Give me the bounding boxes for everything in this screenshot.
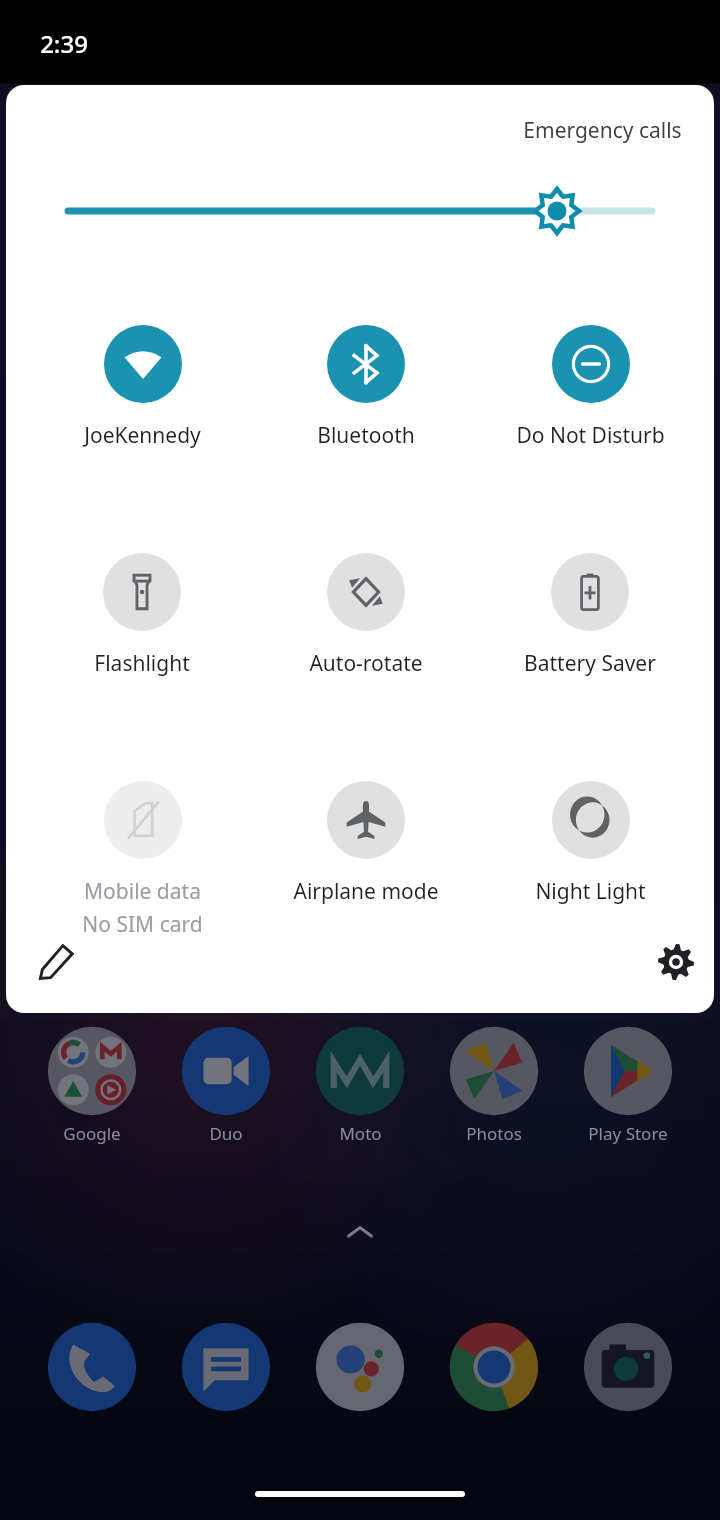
button[interactable]: Bluetooth xyxy=(258,325,474,515)
button[interactable]: Messages xyxy=(179,1320,273,1414)
staticText: 2:39 xyxy=(40,27,88,60)
button[interactable] xyxy=(6,173,714,243)
staticText: No SIM card xyxy=(82,910,203,939)
button[interactable]: Google xyxy=(38,1024,146,1152)
button[interactable]: Emergency calls xyxy=(519,112,686,149)
button[interactable]: Photos xyxy=(440,1024,548,1152)
staticText: Night Light xyxy=(535,877,646,906)
button[interactable]: Airplane mode xyxy=(258,781,474,971)
button[interactable]: Flashlight xyxy=(34,553,250,743)
button[interactable]: Chrome xyxy=(447,1320,541,1414)
button[interactable]: Mobile data xyxy=(34,781,250,971)
staticText: Flashlight xyxy=(94,649,190,678)
staticText: Airplane mode xyxy=(293,877,439,906)
button[interactable]: Settings xyxy=(644,930,708,994)
button[interactable]: Night Light xyxy=(482,781,698,971)
button[interactable]: Camera xyxy=(581,1320,675,1414)
button[interactable]: Assistant xyxy=(313,1320,407,1414)
button[interactable]: Duo xyxy=(172,1024,280,1152)
staticText: JoeKennedy xyxy=(84,421,201,450)
staticText: Bluetooth xyxy=(317,421,415,450)
button[interactable]: Battery Saver xyxy=(482,553,698,743)
button[interactable]: Phone xyxy=(45,1320,139,1414)
button[interactable]: Moto xyxy=(306,1024,414,1152)
staticText: Battery Saver xyxy=(524,649,656,678)
button[interactable]: JoeKennedy xyxy=(34,325,250,515)
button[interactable]: Play Store xyxy=(574,1024,682,1152)
button[interactable]: Do Not Disturb xyxy=(482,325,698,515)
staticText: Mobile data xyxy=(84,877,201,906)
staticText: Duo xyxy=(209,1122,243,1145)
button[interactable]: Edit tiles xyxy=(24,930,88,994)
staticText: Do Not Disturb xyxy=(516,421,665,450)
staticText: Play Store xyxy=(588,1122,668,1145)
staticText: Moto xyxy=(339,1122,382,1145)
staticText: Auto-rotate xyxy=(309,649,423,678)
staticText: Photos xyxy=(466,1122,522,1145)
button[interactable]: Auto-rotate xyxy=(258,553,474,743)
staticText: Emergency calls xyxy=(523,116,682,145)
staticText: Google xyxy=(63,1122,121,1145)
